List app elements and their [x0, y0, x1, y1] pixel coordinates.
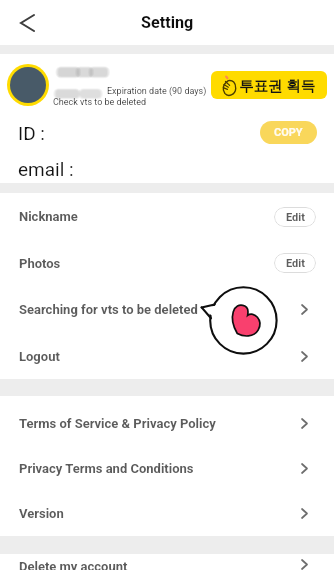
button[interactable]: Edit	[274, 207, 316, 227]
staticText: Edit	[286, 257, 305, 270]
staticText: ID :	[18, 122, 45, 144]
button[interactable]: Searching for vts to be deleted	[0, 286, 334, 333]
button[interactable]: Logout	[0, 333, 334, 379]
staticText: Delete my account	[19, 559, 128, 570]
staticText: Searching for vts to be deleted	[19, 302, 198, 317]
staticText: Privacy Terms and Conditions	[19, 461, 194, 476]
staticText: Version	[19, 506, 64, 521]
staticText: Edit	[286, 211, 305, 224]
staticText: Nickname	[19, 209, 78, 224]
button[interactable]: Privacy Terms and Conditions	[0, 446, 334, 491]
staticText: Terms of Service & Privacy Policy	[19, 416, 216, 431]
staticText: COPY	[274, 126, 303, 139]
staticText: Logout	[19, 349, 60, 364]
staticText: 투표권 획득	[239, 75, 316, 95]
button[interactable]: COPY	[260, 121, 317, 144]
button[interactable]: Photos	[0, 240, 334, 286]
button[interactable]: Edit	[274, 253, 316, 273]
staticText: Photos	[19, 256, 61, 271]
staticText: Expiration date (90 days)	[107, 86, 207, 97]
staticText: Check vts to be deleted	[53, 97, 147, 108]
button[interactable]: Back	[5, 1, 49, 45]
button[interactable]: 투표권 획득	[211, 71, 327, 99]
staticText: email :	[18, 158, 74, 180]
button[interactable]: Nickname	[0, 193, 334, 240]
button[interactable]: Terms of Service & Privacy Policy	[0, 401, 334, 446]
staticText: Setting	[141, 13, 194, 32]
button[interactable]: Version	[0, 491, 334, 536]
button[interactable]: Delete my account	[0, 559, 334, 570]
